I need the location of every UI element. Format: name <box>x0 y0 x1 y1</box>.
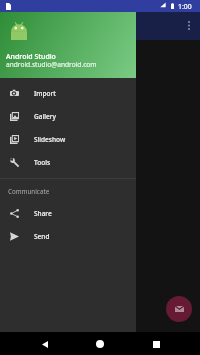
staticText: Send <box>34 232 50 241</box>
staticText: 1:00 <box>178 2 192 11</box>
button[interactable]: Home <box>89 333 111 355</box>
staticText: android.studio@android.com <box>6 60 97 69</box>
button[interactable]: Recent apps <box>145 333 167 355</box>
button[interactable]: Tools <box>0 151 136 174</box>
button[interactable]: Back <box>34 333 56 355</box>
button[interactable]: Compose email <box>166 296 192 322</box>
button[interactable]: Import <box>0 82 136 105</box>
button[interactable]: More options <box>178 14 200 36</box>
staticText: Tools <box>34 158 51 167</box>
staticText: Gallery <box>34 112 56 121</box>
staticText: Communicate <box>8 187 50 195</box>
button[interactable]: Send <box>0 225 136 248</box>
staticText: Slideshow <box>34 135 66 144</box>
button[interactable]: Slideshow <box>0 128 136 151</box>
staticText: Android Studio <box>6 52 56 62</box>
button[interactable]: Gallery <box>0 105 136 128</box>
staticText: Share <box>34 209 52 218</box>
staticText: Import <box>34 89 56 98</box>
button[interactable]: Share <box>0 202 136 225</box>
